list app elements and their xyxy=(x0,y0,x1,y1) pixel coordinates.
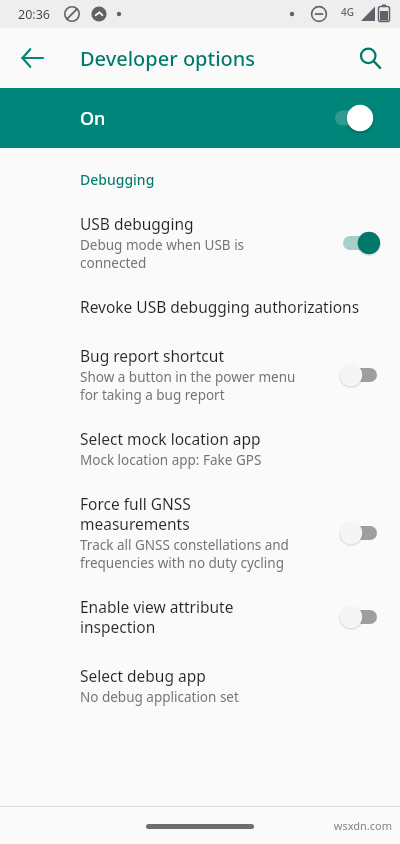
other: Bug report shortcut xyxy=(334,358,386,392)
staticText: Bug report shortcut xyxy=(80,345,315,366)
button[interactable]: Back xyxy=(10,36,54,80)
staticText: 20:36 xyxy=(18,6,50,23)
button[interactable]: Search xyxy=(348,36,392,80)
staticText: Track all GNSS constellations and freque… xyxy=(80,536,310,572)
staticText: 4G xyxy=(341,5,354,19)
staticText: Select mock location app xyxy=(80,428,360,449)
button[interactable]: Select mock location app xyxy=(0,414,400,481)
staticText: Enable view attribute inspection xyxy=(80,596,310,637)
other: Developer options on xyxy=(326,101,378,135)
button[interactable]: Revoke USB debugging authorizations xyxy=(0,282,400,331)
staticText: wsxdn.com xyxy=(333,818,392,833)
button[interactable]: Debugging xyxy=(80,170,155,189)
staticText: Revoke USB debugging authorizations xyxy=(80,296,386,317)
staticText: Developer options xyxy=(80,45,256,72)
other: Home xyxy=(146,824,254,829)
staticText: Debug mode when USB is connected xyxy=(80,236,295,272)
staticText: Select debug app xyxy=(80,665,360,686)
button[interactable]: USB debugging xyxy=(0,205,400,282)
other: Force full GNSS measurements xyxy=(334,516,386,550)
button[interactable]: Enable view attribute inspection xyxy=(0,582,400,653)
button[interactable]: Bug report shortcut xyxy=(0,331,400,414)
button[interactable]: Select debug app xyxy=(0,653,400,716)
staticText: No debug application set xyxy=(80,688,360,706)
staticText: Show a button in the power menu for taki… xyxy=(80,368,315,404)
other: Enable view attribute inspection xyxy=(334,600,386,634)
button[interactable]: On xyxy=(0,88,400,148)
staticText: Mock location app: Fake GPS xyxy=(80,451,360,469)
staticText: On xyxy=(80,106,326,131)
staticText: Force full GNSS measurements xyxy=(80,493,310,534)
other: USB debugging xyxy=(334,226,386,260)
button[interactable]: Force full GNSS measurements xyxy=(0,481,400,582)
staticText: USB debugging xyxy=(80,213,295,234)
